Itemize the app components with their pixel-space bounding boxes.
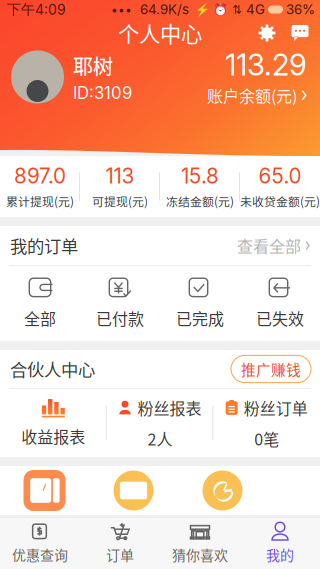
staticText: 已付款 — [96, 306, 144, 330]
button[interactable]: 65.0 — [240, 163, 320, 210]
staticText: 猜你喜欢 — [172, 544, 228, 565]
button[interactable]: 设置 — [250, 18, 284, 48]
button[interactable]: 耶树 — [11, 50, 132, 103]
staticText: 65.0 — [258, 163, 301, 188]
staticText: 897.0 — [14, 163, 66, 188]
staticText: 收益报表 — [21, 424, 85, 448]
button[interactable]: 查看全部 — [237, 234, 310, 257]
staticText: 36% — [286, 1, 315, 17]
staticText: 15.8 — [181, 163, 219, 188]
button[interactable]: 粉丝报表 — [107, 396, 213, 450]
button[interactable]: 优惠查询 — [0, 522, 80, 565]
staticText: 粉丝报表 — [137, 396, 201, 419]
staticText: 粉丝订单 — [244, 396, 308, 419]
staticText: 耶树 — [73, 51, 113, 80]
button[interactable]: 已付款 — [80, 277, 160, 330]
button[interactable]: 收益报表 — [0, 398, 107, 448]
staticText: ⚡ ⏰ ⇅ — [189, 2, 242, 17]
staticText: 冻结金额(元) — [166, 192, 234, 210]
staticText: 优惠查询 — [12, 544, 68, 565]
staticText: 113.29 — [225, 47, 307, 83]
staticText: 未收贷金额(元) — [240, 192, 320, 210]
staticText: 已失效 — [256, 306, 304, 330]
staticText: 合伙人中心 — [10, 356, 95, 382]
button[interactable]: 推广赚钱 — [231, 355, 311, 383]
staticText: 我的订单 — [10, 233, 78, 258]
staticText: ID:3109 — [73, 83, 132, 103]
button[interactable]: 113 — [80, 163, 160, 210]
staticText: 64.9K/s — [132, 1, 189, 17]
button[interactable]: 已完成 — [160, 277, 240, 330]
staticText: 订单 — [106, 544, 134, 565]
staticText: 个人中心 — [118, 18, 202, 48]
staticText: 可提现(元) — [92, 192, 148, 210]
button[interactable]: 猜你喜欢 — [160, 522, 240, 565]
staticText: 累计提现(元) — [6, 192, 74, 210]
staticText: 113 — [105, 163, 134, 188]
staticText: 下午4:09 — [7, 1, 66, 18]
staticText: 4G — [242, 1, 265, 17]
button[interactable]: 15.8 — [160, 163, 240, 210]
staticText: ••• — [111, 2, 132, 17]
button[interactable]: 记账本 — [0, 466, 89, 515]
staticText: 2人 — [147, 427, 172, 450]
button[interactable]: 数据报表 — [178, 466, 267, 515]
staticText: 0笔 — [254, 427, 279, 450]
staticText: 账户余额(元) — [207, 84, 297, 107]
staticText: 全部 — [24, 306, 56, 330]
button[interactable]: 我的 — [240, 522, 320, 565]
staticText: 查看全部 — [237, 234, 301, 257]
button[interactable]: 订单 — [80, 522, 160, 565]
button[interactable]: 全部 — [0, 277, 80, 330]
staticText: 已完成 — [176, 306, 224, 330]
button[interactable]: 消息 — [284, 18, 316, 48]
button[interactable]: 113.29 — [207, 47, 307, 107]
button[interactable]: 897.0 — [0, 163, 80, 210]
staticText: 我的 — [266, 544, 294, 565]
button[interactable]: 已失效 — [240, 277, 320, 330]
staticText: 推广赚钱 — [241, 358, 301, 380]
button[interactable]: 粉丝订单 — [213, 396, 320, 450]
button[interactable]: 升级会员 — [89, 466, 178, 515]
